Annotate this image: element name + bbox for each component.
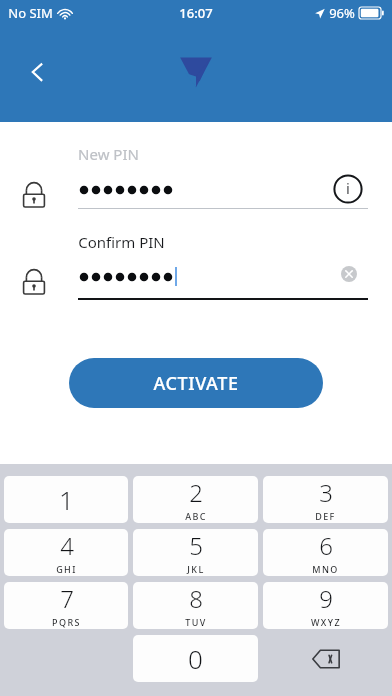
staticText: WXYZ	[311, 616, 341, 628]
staticText: GHI	[56, 563, 77, 575]
button[interactable]: PIN information	[325, 166, 371, 212]
staticText: DEF	[315, 510, 336, 522]
button[interactable]: 4	[4, 529, 128, 576]
button[interactable]: 0	[133, 635, 258, 682]
staticText: New PIN	[78, 144, 139, 164]
staticText: 3	[319, 476, 333, 509]
staticText: TUV	[185, 616, 207, 628]
staticText: 8	[189, 582, 203, 615]
staticText: i	[346, 178, 350, 198]
staticText: ACTIVATE	[153, 371, 239, 396]
staticText: 2	[189, 476, 203, 509]
staticText: MNO	[312, 563, 339, 575]
button[interactable]: 9	[263, 582, 388, 629]
staticText: PQRS	[52, 616, 81, 628]
staticText: 16:07	[179, 4, 213, 22]
staticText: Confirm PIN	[78, 232, 165, 252]
button[interactable]: ACTIVATE	[69, 358, 323, 408]
staticText: 6	[319, 529, 333, 562]
staticText: 0	[188, 641, 203, 676]
button[interactable]: 3	[263, 476, 388, 523]
staticText: 4	[60, 529, 74, 562]
staticText: JKL	[187, 563, 205, 575]
button[interactable]: 2	[133, 476, 258, 523]
staticText: 1	[59, 482, 74, 517]
button[interactable]: 5	[133, 529, 258, 576]
button[interactable]: Back	[14, 48, 62, 96]
button[interactable]: 8	[133, 582, 258, 629]
staticText: 9	[319, 582, 333, 615]
button[interactable]: 1	[4, 476, 128, 523]
staticText: 96%	[329, 4, 355, 22]
button[interactable]: 7	[4, 582, 128, 629]
staticText: 5	[189, 529, 203, 562]
button[interactable]: Clear	[330, 255, 368, 293]
staticText: No SIM	[8, 4, 53, 22]
staticText: ABC	[185, 510, 207, 522]
button[interactable]: 6	[263, 529, 388, 576]
button[interactable]: Backspace	[263, 635, 388, 682]
staticText: 7	[60, 582, 74, 615]
